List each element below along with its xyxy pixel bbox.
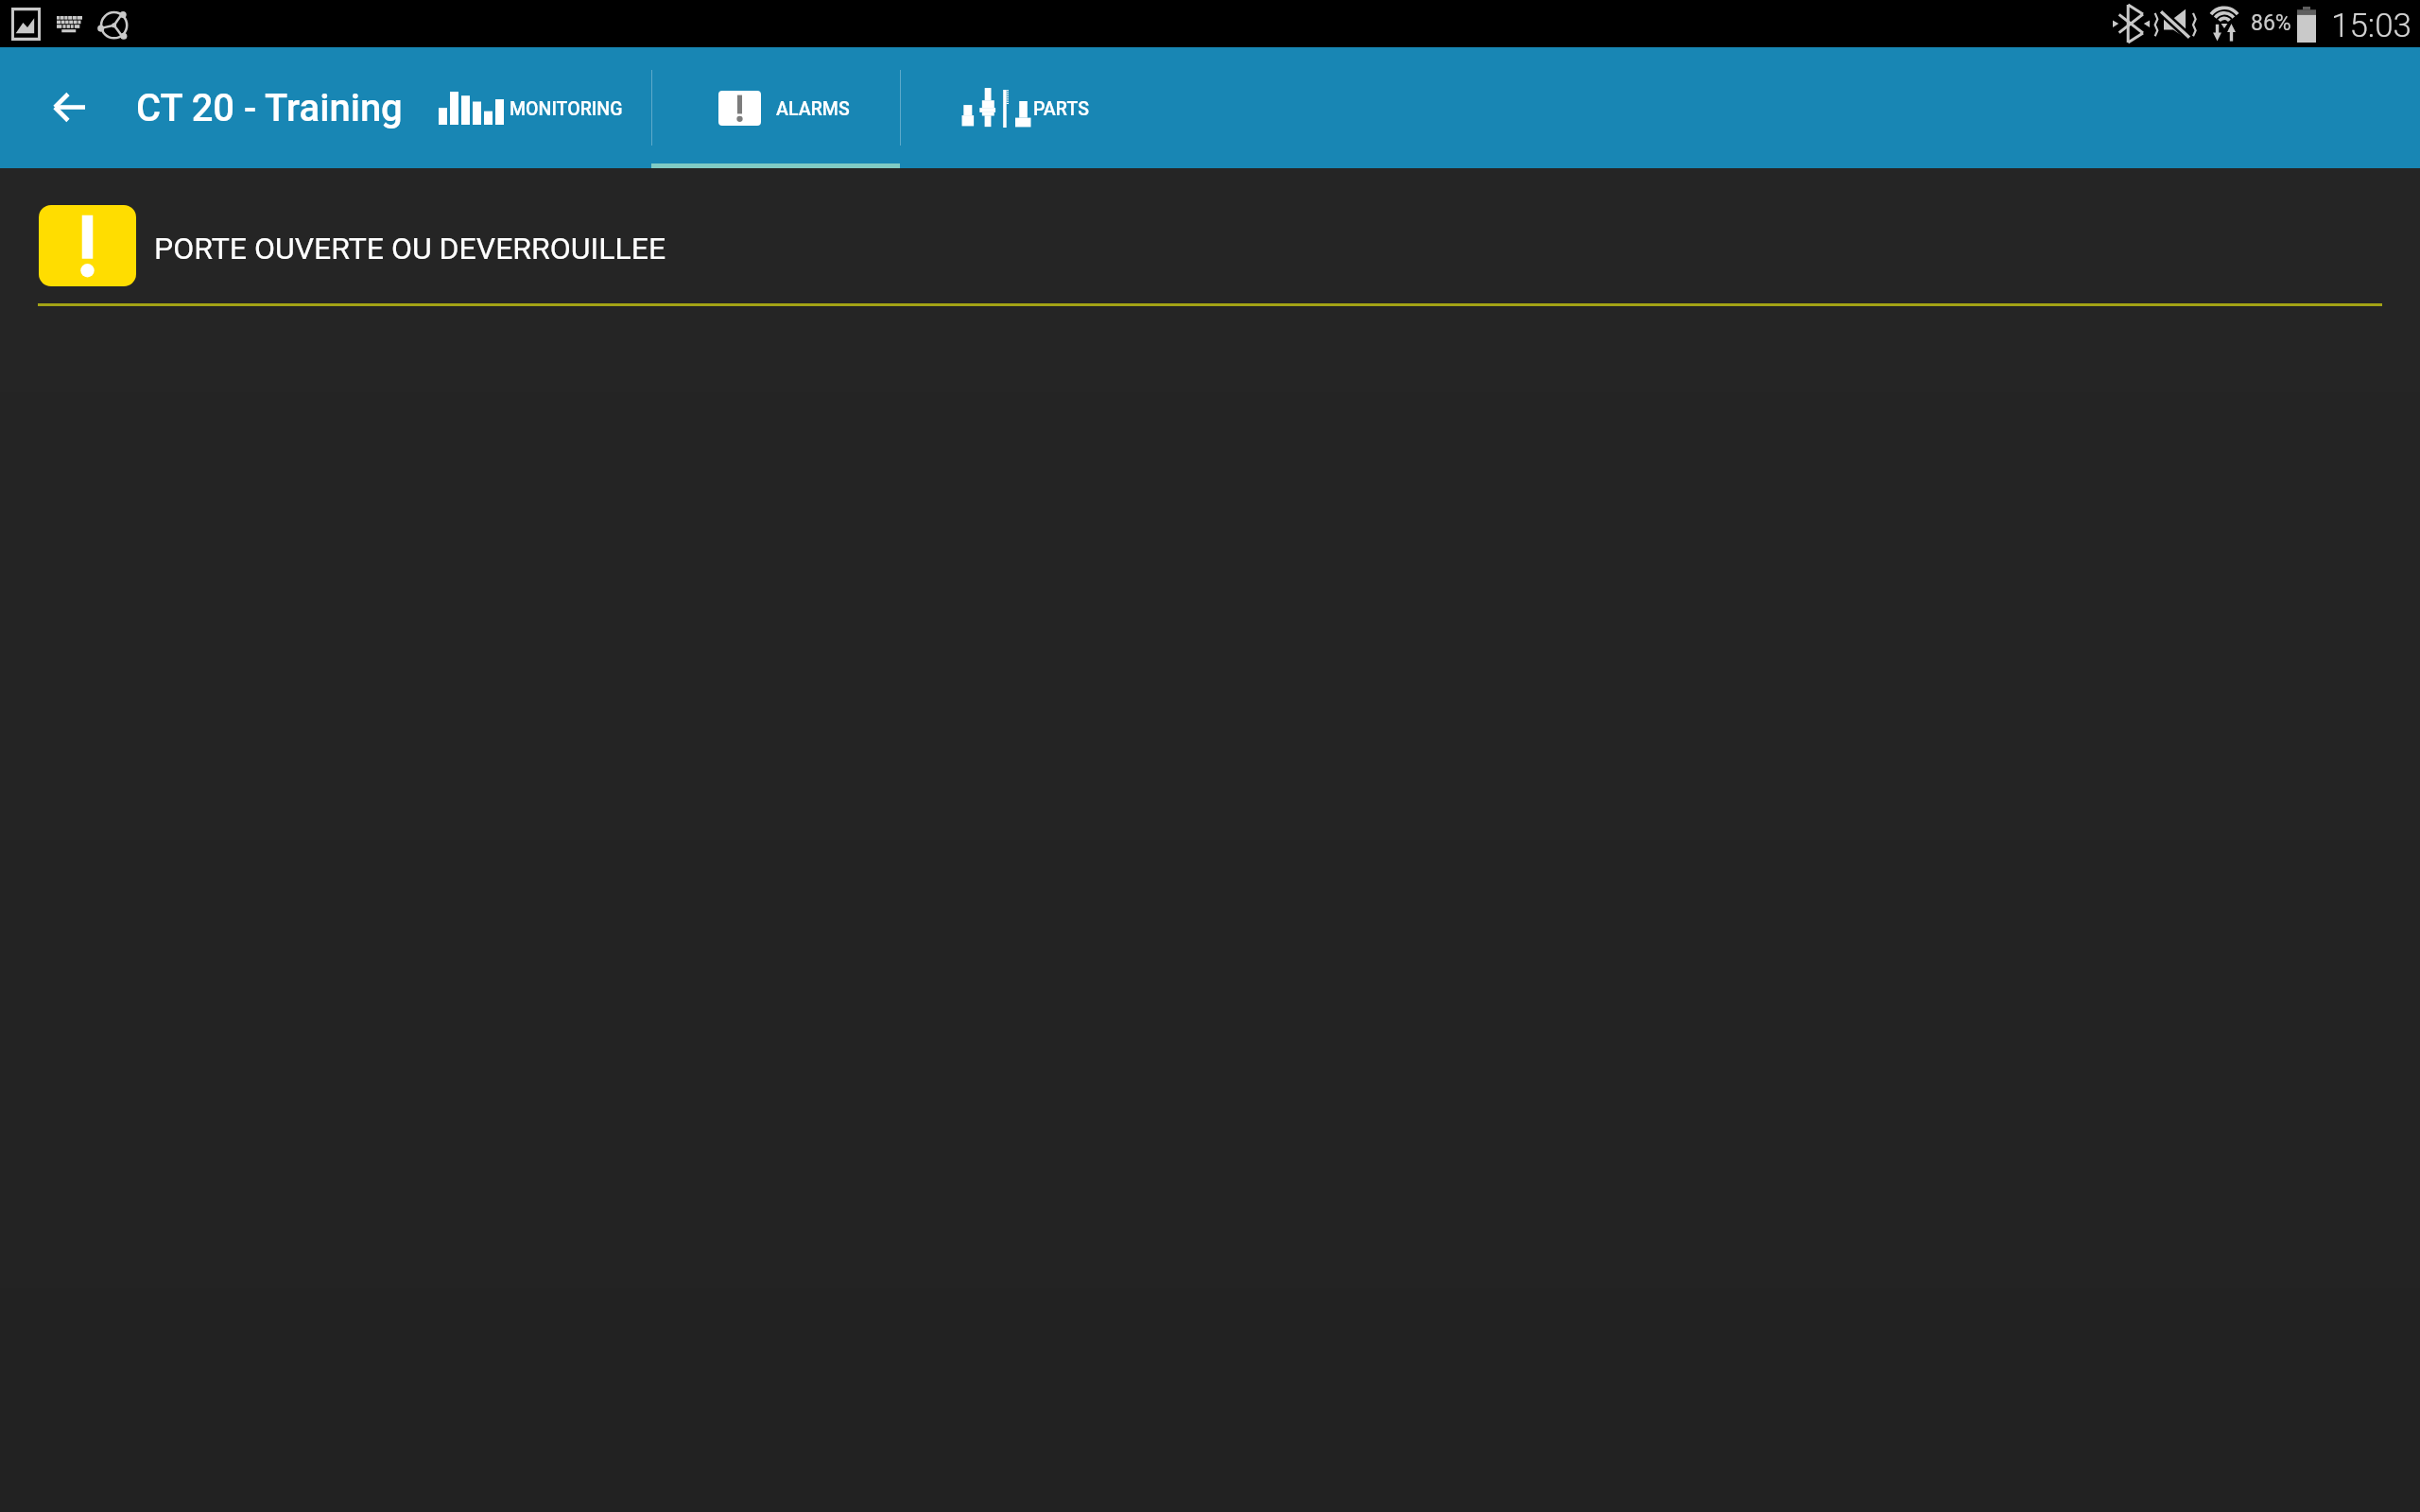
staticText: CT 20 - Training <box>136 86 403 130</box>
staticText: MONITORING <box>510 98 623 120</box>
button[interactable]: ALARMS <box>651 47 900 168</box>
button[interactable]: PARTS <box>900 47 1146 168</box>
button[interactable]: PORTE OUVERTE OU DEVERROUILLEE <box>0 168 2420 306</box>
staticText: ALARMS <box>776 98 850 120</box>
button[interactable]: MONITORING <box>406 47 651 168</box>
staticText: PORTE OUVERTE OU DEVERROUILLEE <box>154 231 666 266</box>
button[interactable]: Back <box>38 76 100 138</box>
staticText: 86% <box>2251 10 2291 36</box>
staticText: PARTS <box>1033 98 1089 120</box>
staticText: 15:03 <box>2331 7 2412 45</box>
